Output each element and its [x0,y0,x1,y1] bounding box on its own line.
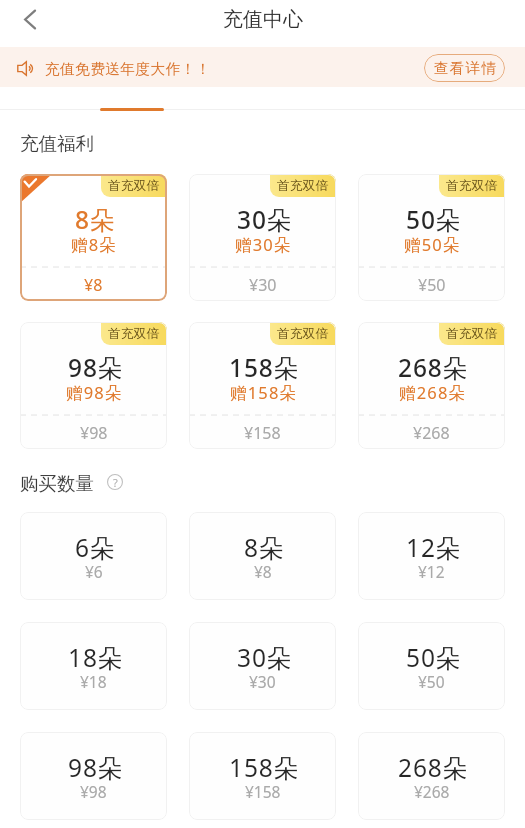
staticText: ¥8 [254,561,272,582]
button[interactable]: 18朵 [20,622,167,710]
staticText: ¥268 [414,781,450,802]
staticText: 查看详情 [434,59,498,77]
staticText: ? [113,475,118,490]
button[interactable]: 158朵 [189,732,336,820]
button[interactable]: 首充双倍 [189,322,336,449]
staticText: 158朵 [229,351,300,384]
staticText: 8朵 [244,531,285,564]
staticText: ¥158 [245,781,281,802]
staticText: ¥8 [84,274,103,296]
button[interactable]: 30朵 [189,622,336,710]
staticText: 268朵 [398,751,469,784]
staticText: 购买数量 [20,472,94,495]
button[interactable]: 8朵 [189,512,336,600]
staticText: ¥50 [418,671,445,692]
staticText: 赠50朵 [404,233,461,256]
button[interactable]: 50朵 [358,622,505,710]
staticText: ¥6 [85,561,103,582]
staticText: 充值福利 [20,132,94,155]
staticText: 首充双倍 [108,326,160,342]
staticText: 赠8朵 [71,233,118,256]
button[interactable]: 268朵 [358,732,505,820]
button[interactable]: Help [107,474,123,490]
staticText: 首充双倍 [108,178,160,194]
staticText: 98朵 [68,751,124,784]
button[interactable]: 6朵 [20,512,167,600]
button[interactable]: Tab [100,108,164,111]
staticText: ¥30 [249,274,277,296]
staticText: 18朵 [68,641,124,674]
staticText: 12朵 [406,531,462,564]
staticText: ¥98 [80,422,108,444]
staticText: 首充双倍 [277,178,329,194]
staticText: 98朵 [68,351,124,384]
staticText: ¥30 [249,671,276,692]
staticText: 30朵 [237,203,293,236]
staticText: ¥50 [418,274,446,296]
staticText: 赠268朵 [399,381,467,404]
button[interactable]: 首充双倍 [358,174,505,301]
button[interactable]: Back [8,0,52,38]
staticText: 首充双倍 [277,326,329,342]
staticText: 充值免费送年度大作！！ [45,60,211,79]
staticText: 首充双倍 [446,178,498,194]
staticText: 充值中心 [223,7,303,32]
staticText: 赠158朵 [230,381,298,404]
staticText: 6朵 [75,531,116,564]
button[interactable]: 98朵 [20,732,167,820]
button[interactable]: 首充双倍 [20,322,167,449]
button[interactable]: 首充双倍 [189,174,336,301]
button[interactable]: 首充双倍 [358,322,505,449]
button[interactable]: 查看详情 [424,54,505,82]
staticText: 50朵 [406,203,462,236]
staticText: ¥268 [413,422,450,444]
staticText: 赠98朵 [66,381,123,404]
staticText: 首充双倍 [446,326,498,342]
staticText: 268朵 [398,351,469,384]
staticText: 30朵 [237,641,293,674]
button[interactable]: 首充双倍 [20,174,167,301]
staticText: 8朵 [75,203,116,236]
button[interactable]: 12朵 [358,512,505,600]
staticText: ¥12 [418,561,445,582]
staticText: 158朵 [229,751,300,784]
staticText: ¥158 [244,422,281,444]
staticText: ¥98 [80,781,107,802]
staticText: 赠30朵 [235,233,292,256]
button[interactable]: 充值免费送年度大作！！ [0,47,525,87]
staticText: ¥18 [80,671,107,692]
staticText: 50朵 [406,641,462,674]
